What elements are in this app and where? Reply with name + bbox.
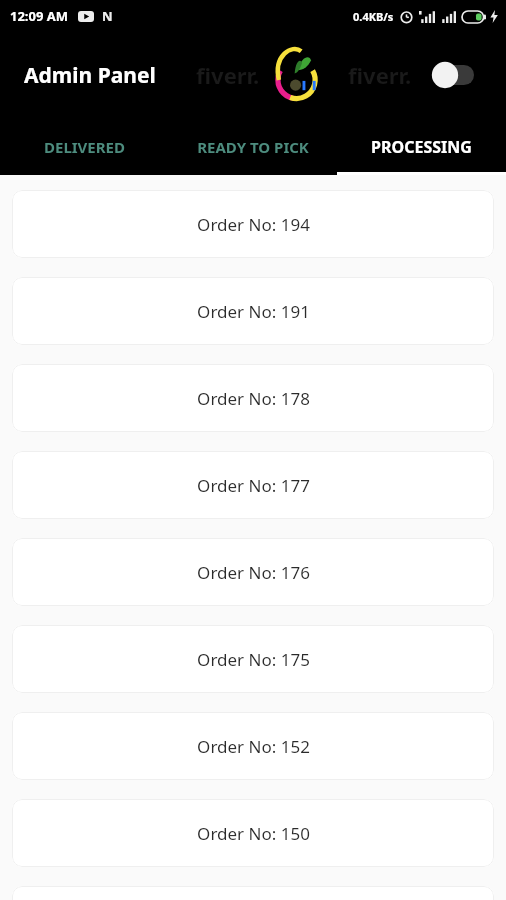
button[interactable]: Order No: 191 — [12, 277, 494, 345]
button[interactable]: Order No: 194 — [12, 190, 494, 258]
staticText: Order No: 178 — [197, 387, 310, 410]
staticText: Order No: 176 — [197, 561, 310, 584]
button[interactable]: PROCESSING — [337, 118, 506, 175]
staticText: Admin Panel — [24, 61, 156, 90]
button[interactable]: Order No: 150 — [12, 799, 494, 867]
staticText: fiverr. — [196, 60, 260, 90]
button[interactable]: Order No: 152 — [12, 712, 494, 780]
staticText: PROCESSING — [371, 136, 472, 158]
button[interactable]: READY TO PICK — [168, 118, 337, 175]
button[interactable]: Toggle online status — [430, 60, 482, 90]
staticText: Order No: 194 — [197, 213, 310, 236]
button[interactable]: Order No: 175 — [12, 625, 494, 693]
button[interactable]: Order No: 178 — [12, 364, 494, 432]
staticText: fiverr. — [348, 60, 412, 90]
button[interactable]: Order No: 176 — [12, 538, 494, 606]
staticText: DELIVERED — [44, 137, 125, 157]
button[interactable]: Order No: 177 — [12, 451, 494, 519]
staticText: Order No: 150 — [197, 822, 310, 845]
button[interactable]: DELIVERED — [0, 118, 168, 175]
staticText: Order No: 177 — [197, 474, 310, 497]
staticText: 0.4KB/s — [353, 9, 394, 24]
staticText: READY TO PICK — [197, 137, 309, 157]
staticText: N — [102, 7, 113, 25]
button[interactable]: Order No: 149 — [12, 886, 494, 900]
other: App logo — [268, 44, 330, 106]
staticText: Order No: 152 — [197, 735, 310, 758]
staticText: 12:09 AM — [10, 7, 69, 25]
staticText: Order No: 191 — [197, 300, 310, 323]
staticText: Order No: 175 — [197, 648, 310, 671]
